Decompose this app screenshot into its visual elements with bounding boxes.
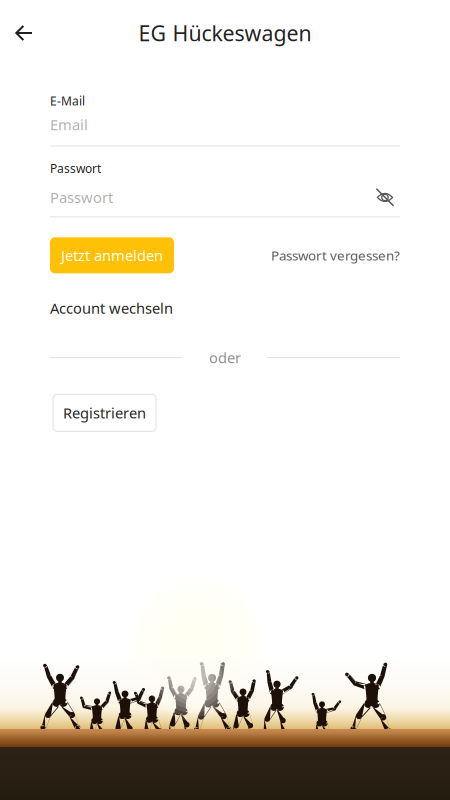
staticText: Passwort [50, 188, 113, 207]
button[interactable]: Passwort anzeigen [370, 185, 400, 209]
button[interactable]: Passwort vergessen? [271, 246, 400, 264]
staticText: oder [209, 348, 241, 367]
staticText: Account wechseln [50, 298, 173, 318]
staticText: Passwort [50, 160, 101, 176]
staticText: E-Mail [50, 93, 85, 109]
staticText: Registrieren [63, 403, 146, 423]
staticText: Email [50, 115, 88, 134]
staticText: Passwort vergessen? [271, 246, 400, 264]
staticText: EG Hückeswagen [138, 19, 311, 47]
staticText: Jetzt anmelden [61, 246, 163, 265]
button[interactable]: Jetzt anmelden [50, 237, 174, 273]
button[interactable]: Account wechseln [50, 298, 173, 318]
button[interactable]: Zurück [0, 9, 48, 57]
button[interactable]: Registrieren [53, 394, 156, 431]
